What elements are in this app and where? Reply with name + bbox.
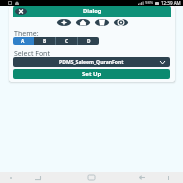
button[interactable]: Set Up xyxy=(13,69,170,79)
button[interactable]: D xyxy=(78,37,99,45)
staticText: 98% xyxy=(145,0,154,6)
staticText: B xyxy=(43,38,47,45)
staticText: Dialog xyxy=(83,7,102,15)
button[interactable]: Keyboard xyxy=(32,172,44,183)
button[interactable]: B xyxy=(34,37,55,45)
button[interactable]: C xyxy=(56,37,77,45)
staticText: PDMS_Saleem_QuranFont xyxy=(59,59,124,66)
button[interactable]: Action 1 xyxy=(57,19,71,26)
button[interactable]: Action 3 xyxy=(95,19,109,26)
button[interactable]: Menu xyxy=(5,172,17,183)
button[interactable]: Close xyxy=(15,8,27,15)
staticText: Theme: xyxy=(14,29,39,39)
staticText: C xyxy=(65,38,69,45)
button[interactable]: PDMS_Saleem_QuranFont xyxy=(13,57,170,67)
staticText: Set Up xyxy=(82,70,102,78)
button[interactable]: A xyxy=(13,37,33,45)
staticText: A xyxy=(21,38,25,45)
button[interactable]: Action 2 xyxy=(76,19,90,26)
staticText: D xyxy=(87,38,91,45)
button[interactable]: More xyxy=(162,172,174,183)
button[interactable]: Back xyxy=(136,172,148,183)
button[interactable]: Recents xyxy=(85,172,97,183)
staticText: Select Font xyxy=(14,49,50,59)
staticText: 12:39 AM xyxy=(161,0,181,6)
button[interactable]: Action 4 xyxy=(114,19,128,26)
